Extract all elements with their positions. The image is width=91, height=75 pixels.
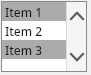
staticText: Item 3 [5,42,43,58]
button[interactable]: Item 3 [2,40,66,59]
button[interactable]: Scroll up [67,2,86,30]
staticText: Item 2 [5,23,43,39]
staticText: Item 1 [5,4,43,20]
button[interactable]: Item 1 [2,2,66,21]
button[interactable]: Item 2 [2,21,66,40]
button[interactable]: Scroll down [67,43,86,71]
